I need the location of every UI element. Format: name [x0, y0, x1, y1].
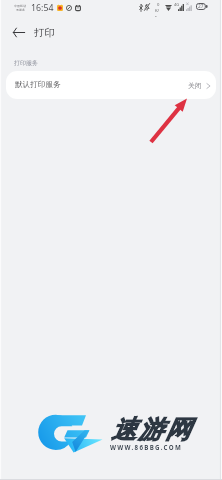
- staticText: WWW.86BBG.COM: [110, 443, 183, 451]
- staticText: 关闭: [188, 81, 202, 90]
- button[interactable]: Back: [6, 19, 32, 45]
- staticText: 27: [198, 3, 204, 10]
- staticText: 速游网: [110, 414, 191, 445]
- staticText: 中国移动: [14, 4, 26, 8]
- staticText: 默认打印服务: [15, 80, 61, 90]
- staticText: 4G: [174, 2, 180, 7]
- staticText: 打印服务: [14, 59, 38, 66]
- staticText: 16:54: [31, 2, 54, 14]
- staticText: 无服务: [16, 8, 25, 12]
- staticText: K/s: [155, 8, 161, 17]
- staticText: 打印: [34, 26, 55, 39]
- staticText: 0: [157, 2, 160, 8]
- button[interactable]: 默认打印服务: [6, 71, 216, 99]
